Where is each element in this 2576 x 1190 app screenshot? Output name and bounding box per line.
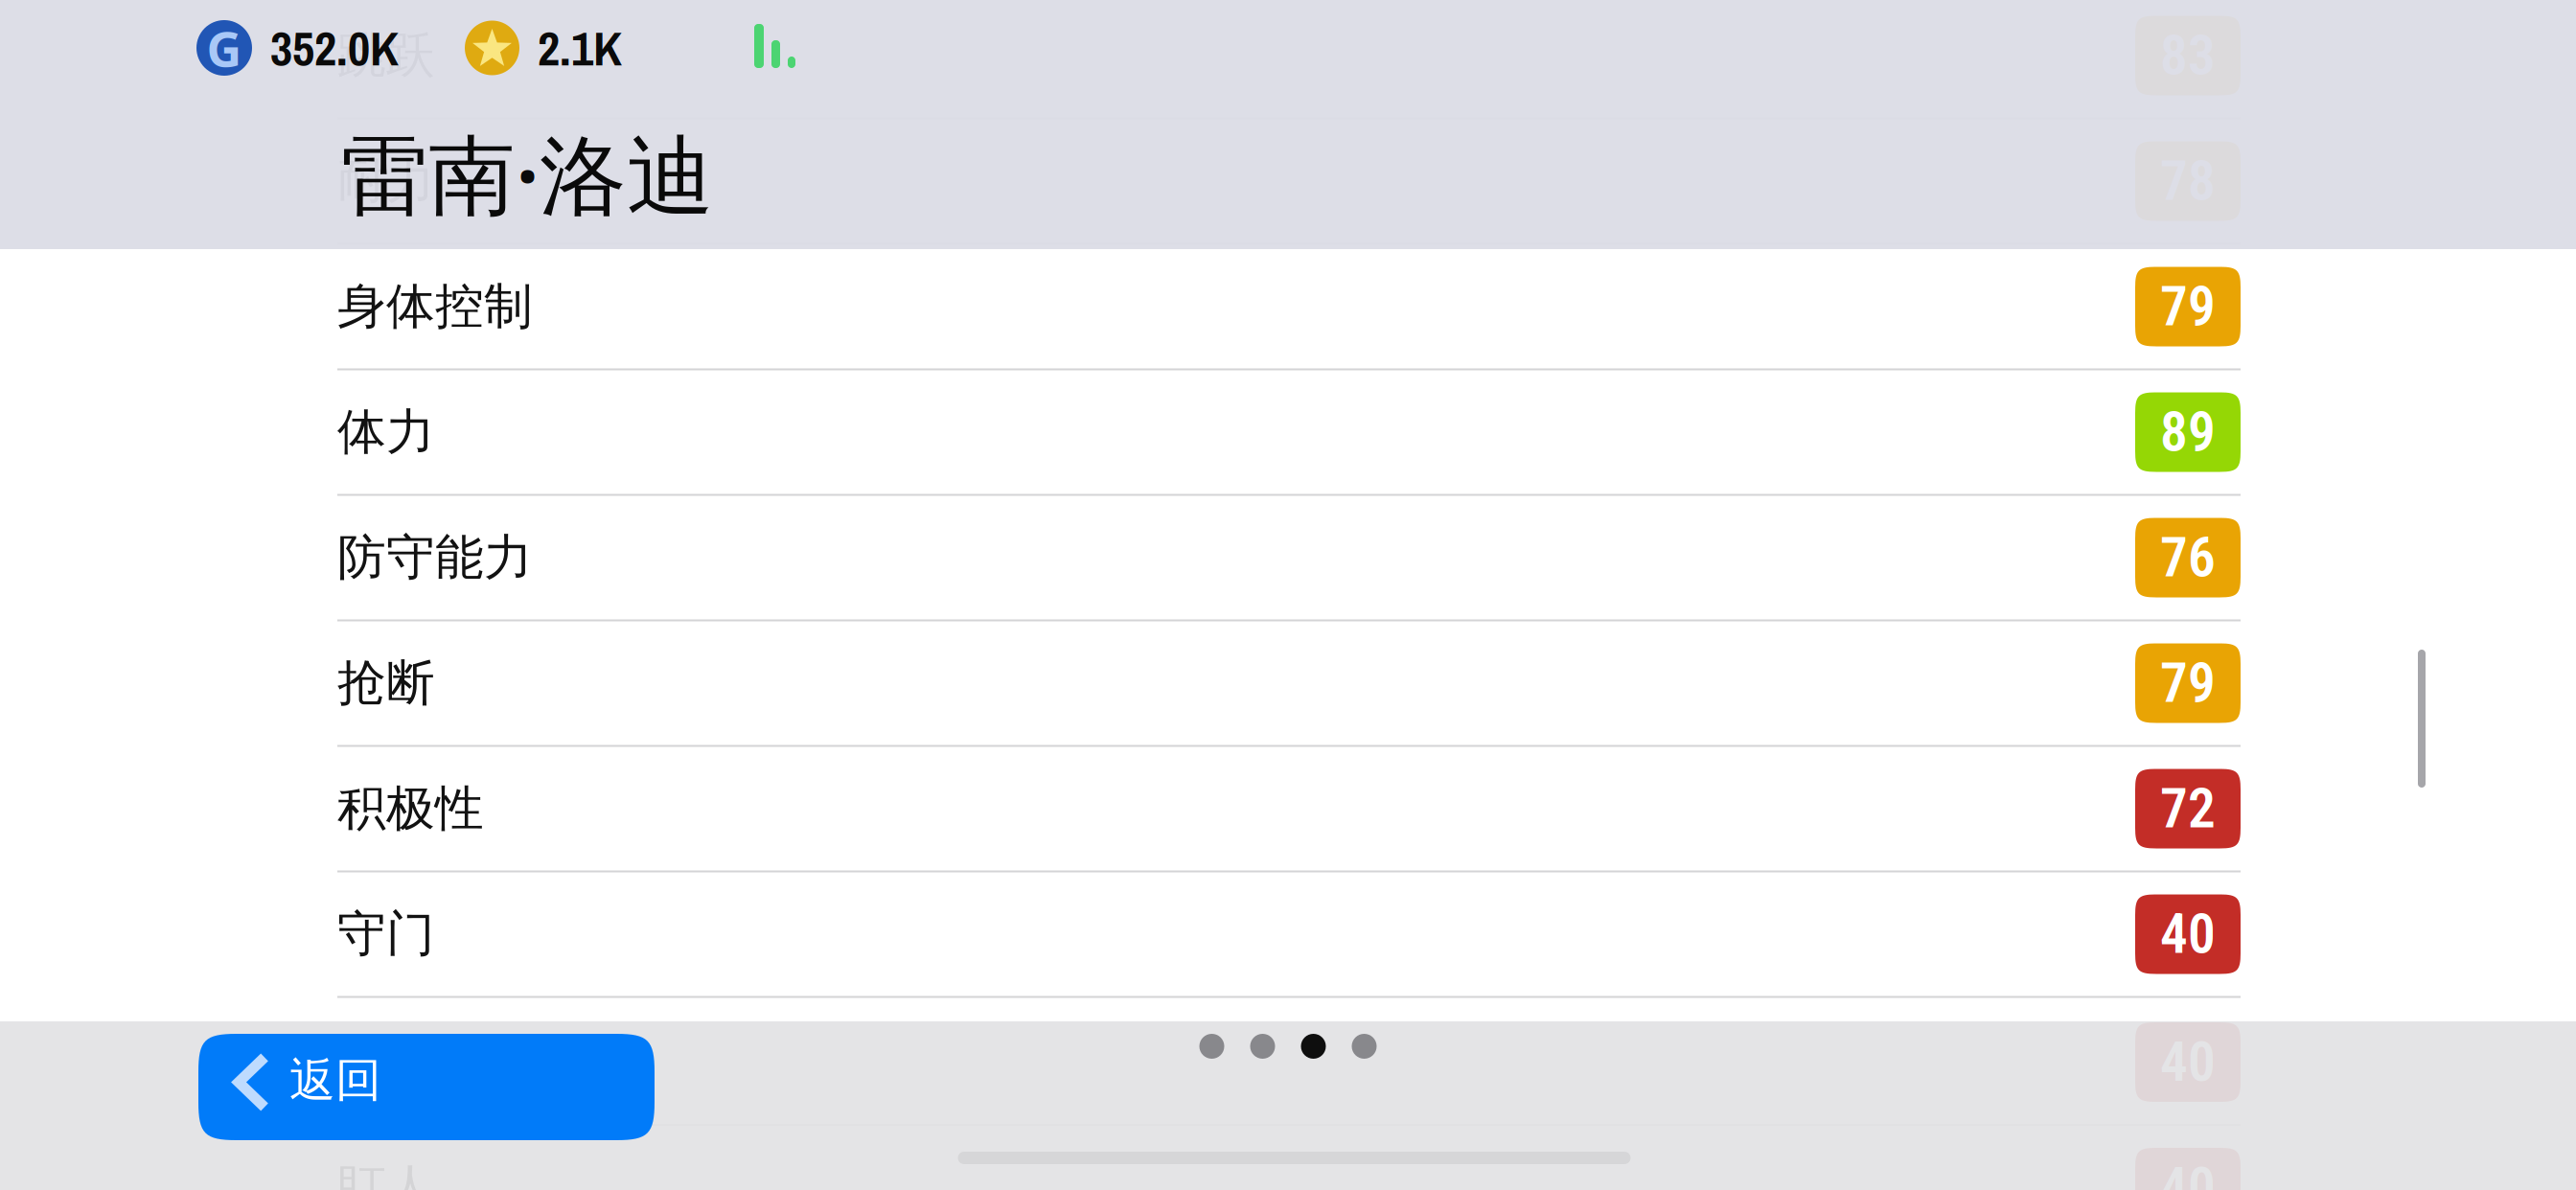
staticText: 2.1K xyxy=(538,15,622,81)
button[interactable]: G xyxy=(196,19,399,77)
staticText: 76 xyxy=(2160,525,2216,590)
staticText: 352.0K xyxy=(270,15,399,81)
staticText: 79 xyxy=(2160,651,2216,715)
staticText: G xyxy=(207,16,242,80)
button[interactable]: 耐力 xyxy=(337,119,2241,245)
staticText: 解围 xyxy=(337,1032,435,1092)
staticText: 雷南·洛迪 xyxy=(341,116,714,231)
staticText: 78 xyxy=(2160,149,2216,213)
staticText: 40 xyxy=(2160,902,2216,966)
staticText: 89 xyxy=(2160,400,2216,464)
button[interactable]: 2.1K xyxy=(465,19,622,77)
staticText: 79 xyxy=(2160,274,2216,339)
staticText: 72 xyxy=(2160,776,2216,841)
staticText: 跳跃 xyxy=(337,26,435,85)
staticText: 盯人 xyxy=(337,1155,435,1190)
staticText: 盯人 xyxy=(337,1158,435,1190)
staticText: 耐力 xyxy=(337,151,435,211)
staticText: 体力 xyxy=(337,402,435,462)
button[interactable]: Page 3 of 4 xyxy=(1199,1027,1377,1065)
staticText: 40 xyxy=(2160,1153,2216,1190)
button[interactable]: 守门 xyxy=(337,872,2241,998)
button[interactable]: 盯人 xyxy=(337,1123,2241,1190)
button[interactable]: 身体控制 xyxy=(337,245,2241,370)
staticText: 解围 xyxy=(337,1030,435,1089)
staticText: 40 xyxy=(2160,1028,2216,1092)
staticText: 积极性 xyxy=(337,779,484,838)
staticText: 返回 xyxy=(289,1052,381,1109)
staticText: 防守能力 xyxy=(337,528,533,587)
staticText: 40 xyxy=(2160,1155,2216,1190)
staticText: 守门 xyxy=(337,904,435,964)
button[interactable]: 跳跃 xyxy=(337,0,2241,119)
staticText: 抢断 xyxy=(337,653,435,713)
button[interactable]: 解围 xyxy=(337,998,2241,1123)
button[interactable]: 返回 xyxy=(198,1034,655,1140)
button[interactable]: 防守能力 xyxy=(337,496,2241,621)
button[interactable]: 体力 xyxy=(337,370,2241,496)
button[interactable]: 抢断 xyxy=(337,621,2241,747)
staticText: 身体控制 xyxy=(337,277,533,336)
staticText: 40 xyxy=(2160,1030,2216,1094)
button[interactable]: 积极性 xyxy=(337,747,2241,872)
staticText: 83 xyxy=(2160,23,2216,88)
button[interactable]: Form xyxy=(754,19,795,77)
